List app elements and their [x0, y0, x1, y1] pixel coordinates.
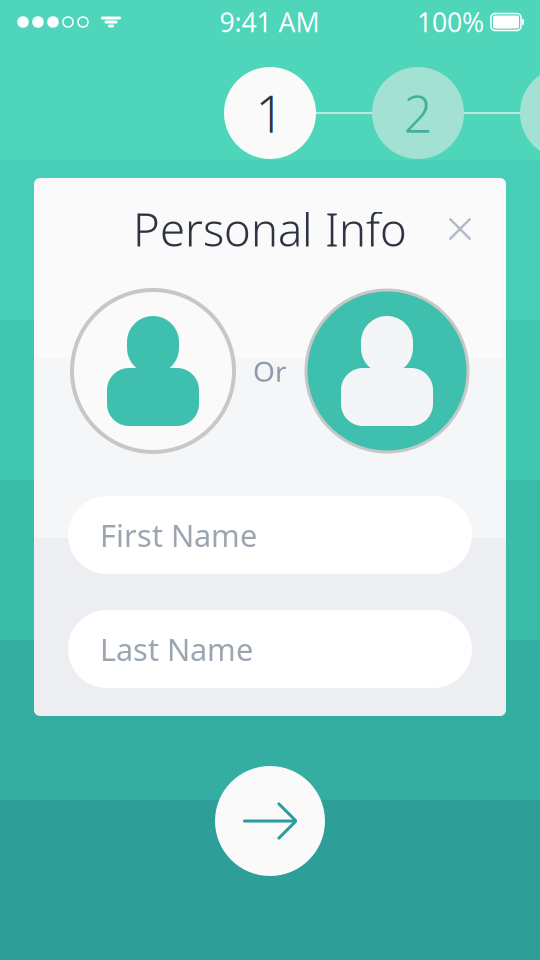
button[interactable]: Step 1: [224, 67, 316, 159]
staticText: Last Name: [100, 629, 253, 669]
staticText: 100%: [417, 4, 484, 40]
button[interactable]: Step 3: [520, 67, 540, 159]
staticText: Personal Info: [133, 199, 407, 259]
button[interactable]: Step 2: [372, 67, 464, 159]
button[interactable]: Use default avatar: [68, 286, 238, 456]
button[interactable]: Close: [436, 205, 484, 253]
staticText: 9:41 AM: [219, 4, 319, 40]
button[interactable]: Last Name: [68, 610, 472, 688]
staticText: 2: [403, 79, 432, 147]
button[interactable]: Next: [215, 766, 325, 876]
staticText: First Name: [100, 515, 257, 555]
staticText: Or: [253, 352, 287, 390]
button[interactable]: Use photo avatar: [302, 286, 472, 456]
button[interactable]: First Name: [68, 496, 472, 574]
staticText: 1: [255, 79, 284, 147]
